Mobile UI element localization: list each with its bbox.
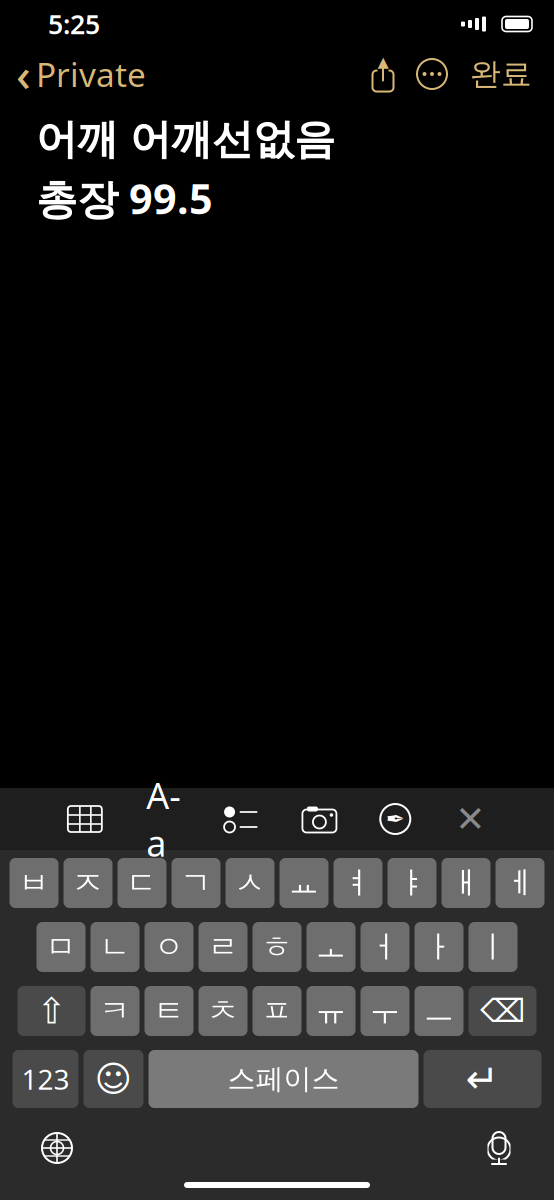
staticText: ㄹ	[207, 928, 238, 966]
staticText: 123	[21, 1060, 69, 1098]
button[interactable]: ㅗ	[306, 922, 355, 972]
button[interactable]: Emoji	[83, 1050, 143, 1108]
staticText: ☺	[94, 1059, 132, 1099]
staticText: ⇧	[36, 991, 66, 1031]
staticText: ㅋ	[99, 992, 130, 1030]
staticText: 총장 99.5	[36, 171, 213, 226]
staticText: ㅅ	[234, 864, 265, 902]
staticText: ㅕ	[342, 864, 373, 902]
button[interactable]: ㅋ	[90, 986, 139, 1036]
button[interactable]: ㅐ	[441, 858, 490, 908]
staticText: 5:25	[48, 6, 100, 42]
staticText: Aa	[146, 771, 181, 867]
button[interactable]: More	[406, 58, 458, 90]
button[interactable]: Camera	[301, 804, 337, 834]
staticText: ㅜ	[369, 992, 400, 1030]
button[interactable]: Close keyboard	[453, 803, 487, 835]
button[interactable]: ㅕ	[333, 858, 382, 908]
button[interactable]: Next keyboard	[40, 1131, 74, 1165]
button[interactable]: ㅎ	[252, 922, 301, 972]
button[interactable]: Format	[144, 804, 184, 834]
staticText: ㅏ	[423, 928, 454, 966]
staticText: ✕	[455, 799, 485, 839]
button[interactable]: ‹	[0, 38, 146, 110]
staticText: ㅔ	[504, 864, 535, 902]
staticText: 스페이스	[227, 1062, 339, 1096]
button[interactable]: 스페이스	[148, 1050, 418, 1108]
staticText: ㅓ	[369, 928, 400, 966]
button[interactable]: ㅁ	[36, 922, 85, 972]
staticText: Private	[36, 52, 146, 96]
button[interactable]: ㄴ	[90, 922, 139, 972]
button[interactable]: ㅍ	[252, 986, 301, 1036]
button[interactable]: ㅇ	[144, 922, 193, 972]
button[interactable]: Delete	[468, 986, 536, 1036]
staticText: ⌫	[480, 993, 525, 1029]
button[interactable]: ㅈ	[63, 858, 112, 908]
staticText: ㅌ	[153, 992, 184, 1030]
button[interactable]: Markup	[378, 803, 412, 835]
button[interactable]: ㅡ	[414, 986, 463, 1036]
button[interactable]: ㅑ	[387, 858, 436, 908]
button[interactable]: ㅣ	[468, 922, 517, 972]
staticText: ▲	[377, 54, 388, 70]
button[interactable]: ㄷ	[117, 858, 166, 908]
staticText: ㄷ	[126, 864, 157, 902]
button[interactable]: ㄹ	[198, 922, 247, 972]
button[interactable]: Table	[67, 805, 103, 833]
button[interactable]: Shift	[17, 986, 85, 1036]
button[interactable]: Share	[360, 57, 406, 91]
staticText: ㅛ	[288, 864, 319, 902]
button[interactable]: ㅠ	[306, 986, 355, 1036]
button[interactable]: 완료	[458, 55, 544, 93]
button[interactable]: 123	[12, 1050, 78, 1108]
button[interactable]: Checklist	[225, 805, 261, 833]
button[interactable]: ㅜ	[360, 986, 409, 1036]
staticText: ↵	[465, 1056, 499, 1102]
staticText: 어깨 어깨선없음	[36, 114, 335, 165]
button[interactable]: ㅅ	[225, 858, 274, 908]
staticText: ㅍ	[261, 992, 292, 1030]
staticText: ㅎ	[261, 928, 292, 966]
staticText: ㅑ	[396, 864, 427, 902]
button[interactable]: ㅊ	[198, 986, 247, 1036]
staticText: ✒	[386, 806, 405, 832]
button[interactable]: ㅛ	[279, 858, 328, 908]
staticText: ㄴ	[99, 928, 130, 966]
button[interactable]: ㅂ	[9, 858, 58, 908]
staticText: ㅇ	[153, 928, 184, 966]
staticText: 완료	[470, 55, 532, 93]
button[interactable]: ㅏ	[414, 922, 463, 972]
staticText: ㅗ	[315, 928, 346, 966]
button[interactable]: Return	[423, 1050, 541, 1108]
button[interactable]: ㅔ	[495, 858, 544, 908]
staticText: ㅣ	[477, 928, 508, 966]
staticText: ㅈ	[72, 864, 103, 902]
staticText: ㅊ	[207, 992, 238, 1030]
button[interactable]: ㄱ	[171, 858, 220, 908]
staticText: ㄱ	[180, 864, 211, 902]
staticText: ㅁ	[45, 928, 76, 966]
staticText: ㅂ	[18, 864, 49, 902]
staticText: ㅠ	[315, 992, 346, 1030]
staticText: ‹	[16, 44, 31, 104]
button[interactable]: ㅌ	[144, 986, 193, 1036]
staticText: ㅡ	[423, 992, 454, 1030]
button[interactable]: Dictation	[484, 1130, 514, 1166]
staticText: ㅐ	[450, 864, 481, 902]
button[interactable]: ㅓ	[360, 922, 409, 972]
